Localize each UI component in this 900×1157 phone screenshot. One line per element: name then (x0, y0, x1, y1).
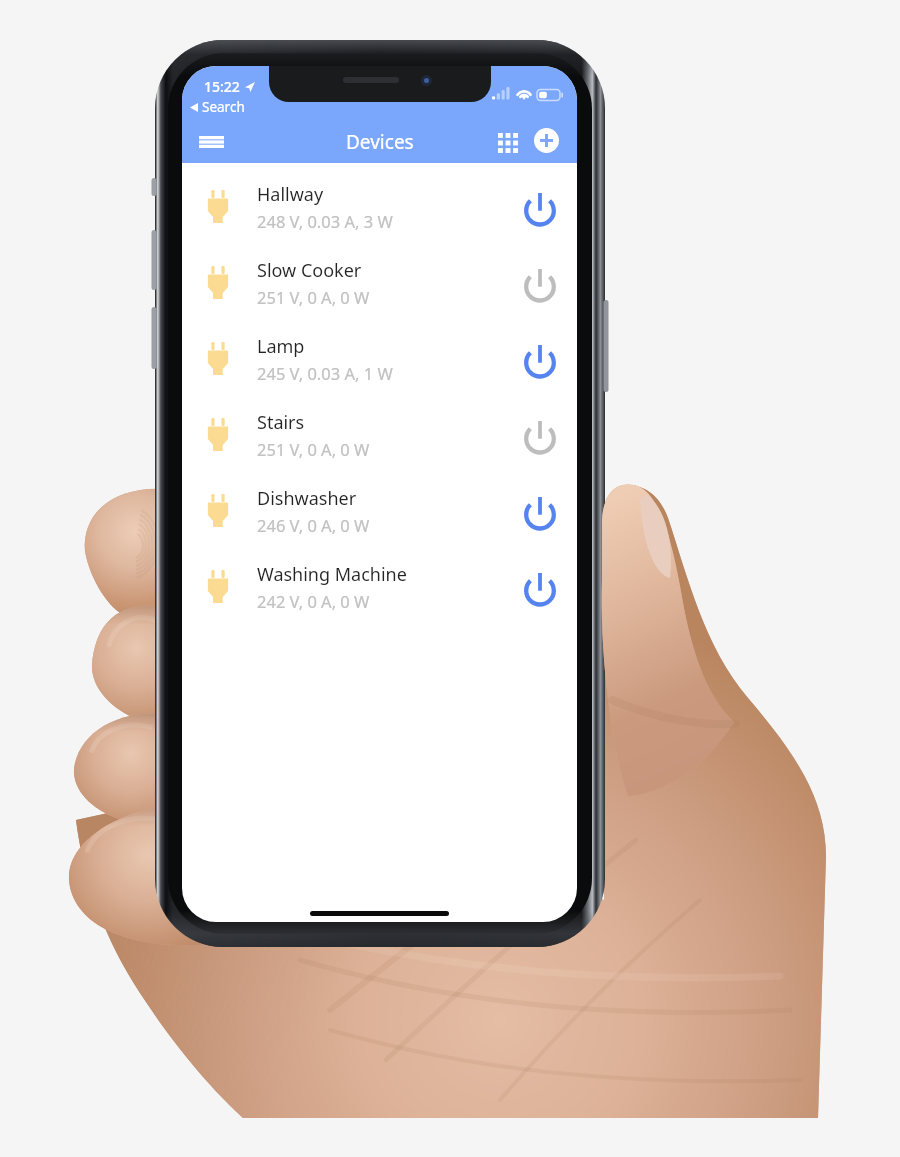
staticText: Washing Machine (257, 562, 407, 587)
staticText: Dishwasher (257, 486, 357, 511)
button[interactable]: Toggle Lamp (512, 330, 568, 386)
button[interactable]: Toggle Washing Machine (512, 558, 568, 614)
button[interactable]: Washing Machine (182, 548, 577, 624)
button[interactable]: Add device (534, 128, 559, 153)
staticText: Devices (346, 129, 414, 155)
button[interactable]: Grid view (492, 127, 524, 159)
button[interactable]: Hallway (182, 168, 577, 244)
button[interactable]: Toggle Dishwasher (512, 482, 568, 538)
staticText: 251 V, 0 A, 0 W (257, 286, 370, 308)
staticText: 251 V, 0 A, 0 W (257, 438, 370, 460)
staticText: Hallway (257, 182, 324, 207)
staticText: 245 V, 0.03 A, 1 W (257, 362, 393, 384)
button[interactable]: Toggle Slow Cooker (512, 254, 568, 310)
button[interactable]: Dishwasher (182, 472, 577, 548)
button[interactable]: Slow Cooker (182, 244, 577, 320)
staticText: Stairs (257, 410, 305, 435)
button[interactable]: Lamp (182, 320, 577, 396)
staticText: 242 V, 0 A, 0 W (257, 590, 370, 612)
staticText: Slow Cooker (257, 258, 362, 283)
staticText: 248 V, 0.03 A, 3 W (257, 210, 393, 232)
button[interactable]: Menu (191, 125, 232, 158)
staticText: Lamp (257, 334, 305, 359)
button[interactable]: Stairs (182, 396, 577, 472)
button[interactable]: Search (190, 98, 245, 116)
button[interactable]: Toggle Hallway (512, 178, 568, 234)
staticText: 15:22 (204, 77, 240, 96)
button[interactable]: Toggle Stairs (512, 406, 568, 462)
staticText: Search (202, 98, 245, 116)
staticText: 246 V, 0 A, 0 W (257, 514, 370, 536)
